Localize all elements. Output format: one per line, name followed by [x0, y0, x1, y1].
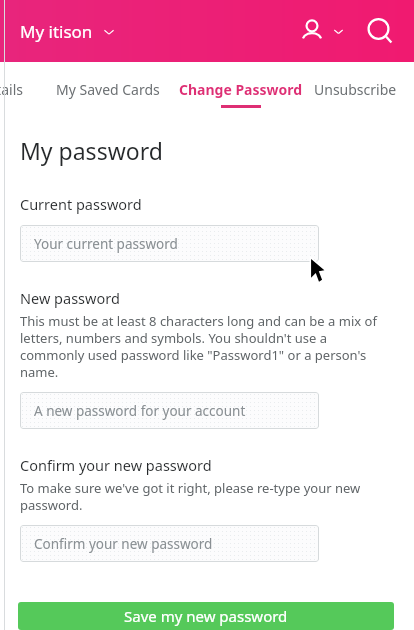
button[interactable]: Save my new password: [18, 602, 394, 630]
staticText: This must be at least 8 characters long …: [20, 312, 388, 381]
button[interactable]: A new password for your account: [20, 392, 319, 429]
button[interactable]: Confirm your new password: [20, 525, 319, 562]
staticText: Your current password: [34, 235, 178, 253]
button[interactable]: Your current password: [20, 225, 319, 262]
staticText: Save my new password: [124, 606, 288, 626]
button[interactable]: My Saved Cards: [56, 80, 160, 99]
staticText: To make sure we've got it right, please …: [20, 479, 372, 514]
staticText: Confirm your new password: [20, 455, 212, 475]
button[interactable]: Search: [362, 13, 398, 49]
staticText: My password: [20, 135, 163, 166]
staticText: Current password: [20, 194, 142, 214]
staticText: A new password for your account: [34, 402, 246, 420]
staticText: New password: [20, 288, 120, 308]
staticText: Details: [0, 80, 23, 99]
button[interactable]: My itison: [18, 16, 117, 47]
staticText: Confirm your new password: [34, 535, 213, 553]
button[interactable]: Account: [295, 14, 348, 48]
button[interactable]: Unsubscribe: [314, 80, 397, 99]
button[interactable]: Change Password: [179, 80, 303, 108]
staticText: My itison: [20, 20, 93, 43]
staticText: My Saved Cards: [56, 80, 160, 99]
button[interactable]: Details: [0, 80, 23, 99]
staticText: Unsubscribe: [314, 80, 397, 99]
staticText: Change Password: [179, 80, 303, 99]
